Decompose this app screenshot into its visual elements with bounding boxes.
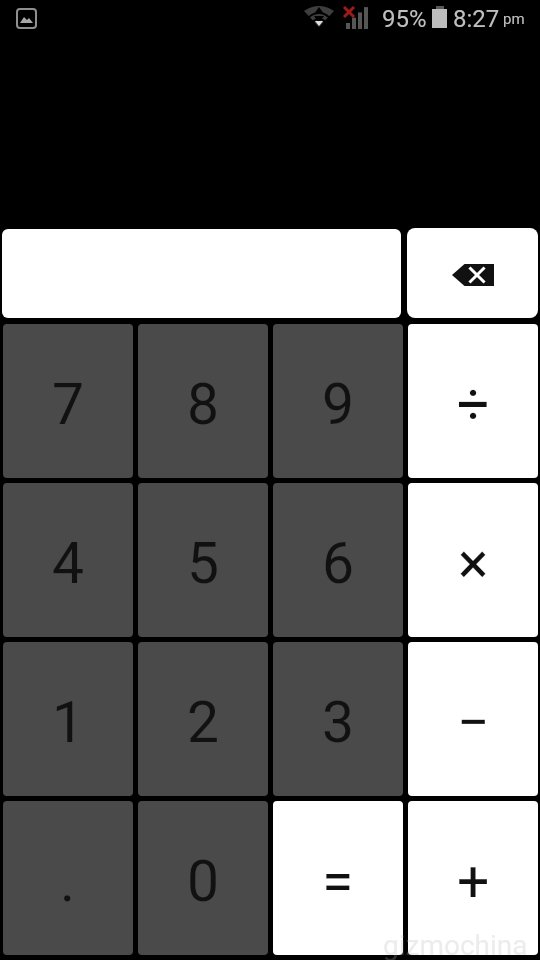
staticText: + [457, 848, 490, 915]
staticText: = [322, 848, 354, 915]
button[interactable] [2, 229, 401, 318]
staticText: 95% [382, 5, 427, 33]
button[interactable]: × [408, 483, 538, 637]
button[interactable]: ÷ [408, 324, 538, 478]
staticText: 8 [187, 371, 220, 438]
staticText: gizmochina [383, 929, 528, 960]
staticText: 8:27 [453, 5, 500, 33]
button[interactable]: 4 [3, 483, 133, 637]
button[interactable]: 1 [3, 642, 133, 796]
button[interactable]: 5 [138, 483, 268, 637]
staticText: 9 [322, 371, 355, 438]
button[interactable]: − [408, 642, 538, 796]
button[interactable]: + [408, 801, 538, 955]
staticText: ÷ [457, 371, 490, 438]
staticText: pm [503, 10, 525, 28]
staticText: − [457, 689, 490, 756]
button[interactable]: 3 [273, 642, 403, 796]
button[interactable] [407, 228, 538, 318]
staticText: 3 [322, 689, 355, 756]
button[interactable]: 7 [3, 324, 133, 478]
button[interactable]: 2 [138, 642, 268, 796]
staticText: 0 [187, 848, 220, 915]
staticText: 5 [187, 530, 220, 597]
button[interactable]: 0 [138, 801, 268, 955]
staticText: 4 [52, 530, 85, 597]
button[interactable]: 8 [138, 324, 268, 478]
staticText: . [60, 848, 76, 915]
staticText: 6 [322, 530, 355, 597]
button[interactable]: = [273, 801, 403, 955]
staticText: × [458, 530, 489, 597]
button[interactable]: 6 [273, 483, 403, 637]
staticText: 7 [52, 371, 85, 438]
staticText: 1 [52, 689, 85, 756]
button[interactable]: 9 [273, 324, 403, 478]
staticText: 2 [187, 689, 220, 756]
